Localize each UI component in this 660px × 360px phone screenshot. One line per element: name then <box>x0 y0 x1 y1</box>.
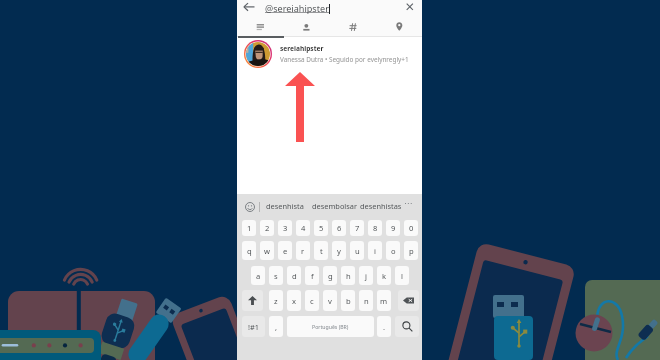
button[interactable]: o <box>386 241 400 260</box>
staticText: e <box>283 246 288 256</box>
button[interactable]: desembolsar <box>311 201 358 211</box>
button[interactable]: y <box>332 241 346 260</box>
button[interactable]: j <box>359 266 373 285</box>
button[interactable]: Shift <box>242 290 263 311</box>
staticText: a <box>256 271 261 281</box>
button[interactable]: 1 <box>242 220 256 236</box>
button[interactable]: !#1 <box>242 316 265 337</box>
staticText: b <box>346 296 351 306</box>
button[interactable]: z <box>269 290 283 311</box>
staticText: desenhistas <box>360 201 402 211</box>
button[interactable]: c <box>305 290 319 311</box>
button[interactable]: 6 <box>332 220 346 236</box>
button[interactable]: 3 <box>278 220 292 236</box>
button[interactable]: Places <box>376 18 422 36</box>
staticText: i <box>374 246 376 256</box>
staticText: ⋯ <box>404 199 412 208</box>
button[interactable]: Search <box>395 316 419 337</box>
button[interactable]: q <box>242 241 256 260</box>
button[interactable]: More suggestions <box>404 199 412 208</box>
staticText: 2 <box>265 223 270 233</box>
button[interactable]: s <box>269 266 283 285</box>
button[interactable]: Português (BR) <box>287 316 374 337</box>
staticText: n <box>364 296 369 306</box>
staticText: f <box>311 271 314 281</box>
button[interactable]: f <box>305 266 319 285</box>
staticText: z <box>274 296 278 306</box>
staticText: d <box>292 271 297 281</box>
staticText: c <box>310 296 314 306</box>
button[interactable]: d <box>287 266 301 285</box>
button[interactable]: i <box>368 241 382 260</box>
button[interactable]: u <box>350 241 364 260</box>
button[interactable]: l <box>395 266 409 285</box>
staticText: k <box>382 271 387 281</box>
button[interactable]: desenhistas <box>359 201 403 211</box>
staticText: y <box>337 246 341 256</box>
button[interactable]: 5 <box>314 220 328 236</box>
staticText: q <box>247 246 252 256</box>
button[interactable]: Top <box>237 18 283 36</box>
staticText: x <box>292 296 297 306</box>
button[interactable]: w <box>260 241 274 260</box>
staticText: . <box>383 322 386 332</box>
button[interactable]: Backspace <box>398 290 419 311</box>
button[interactable]: r <box>296 241 310 260</box>
button[interactable]: 4 <box>296 220 310 236</box>
staticText: 8 <box>373 223 378 233</box>
button[interactable]: n <box>359 290 373 311</box>
button[interactable]: k <box>377 266 391 285</box>
button[interactable]: Emoji <box>245 202 255 212</box>
button[interactable]: People <box>283 18 329 36</box>
staticText: t <box>320 246 323 256</box>
staticText: 4 <box>301 223 306 233</box>
staticText: l <box>401 271 403 281</box>
staticText: Português (BR) <box>312 323 349 330</box>
staticText: s <box>274 271 278 281</box>
button[interactable]: , <box>269 316 283 337</box>
staticText: v <box>328 296 332 306</box>
button[interactable]: e <box>278 241 292 260</box>
button[interactable]: 8 <box>368 220 382 236</box>
button[interactable]: Back <box>238 0 259 18</box>
staticText: 5 <box>319 223 324 233</box>
button[interactable]: desenhista <box>265 201 305 211</box>
button[interactable]: a <box>251 266 265 285</box>
button[interactable]: m <box>377 290 391 311</box>
staticText: !#1 <box>248 322 259 332</box>
button[interactable]: . <box>377 316 391 337</box>
button[interactable]: b <box>341 290 355 311</box>
staticText: @sereiahipster <box>265 2 329 14</box>
button[interactable]: t <box>314 241 328 260</box>
staticText: m <box>380 296 388 306</box>
button[interactable]: 0 <box>404 220 418 236</box>
button[interactable]: g <box>323 266 337 285</box>
button[interactable]: 9 <box>386 220 400 236</box>
staticText: 9 <box>391 223 396 233</box>
staticText: g <box>328 271 333 281</box>
staticText: r <box>301 246 305 256</box>
staticText: Vanessa Dutra • Seguido por evelynregly+… <box>280 55 409 64</box>
staticText: j <box>365 271 367 281</box>
staticText: 7 <box>355 223 360 233</box>
button[interactable] <box>237 38 422 71</box>
staticText: 3 <box>283 223 288 233</box>
staticText: sereiahipster <box>280 44 324 53</box>
staticText: o <box>391 246 396 256</box>
staticText: w <box>264 246 270 256</box>
staticText: 0 <box>409 223 414 233</box>
staticText: desenhista <box>266 201 304 211</box>
staticText: h <box>346 271 351 281</box>
button[interactable]: h <box>341 266 355 285</box>
button[interactable]: x <box>287 290 301 311</box>
button[interactable]: p <box>404 241 418 260</box>
button[interactable]: 2 <box>260 220 274 236</box>
staticText: 6 <box>337 223 342 233</box>
button[interactable]: 7 <box>350 220 364 236</box>
button[interactable]: Tags <box>330 18 376 36</box>
staticText: 1 <box>247 223 252 233</box>
button[interactable]: v <box>323 290 337 311</box>
staticText: p <box>409 246 414 256</box>
button[interactable]: Clear <box>400 0 420 18</box>
staticText: , <box>275 322 278 332</box>
